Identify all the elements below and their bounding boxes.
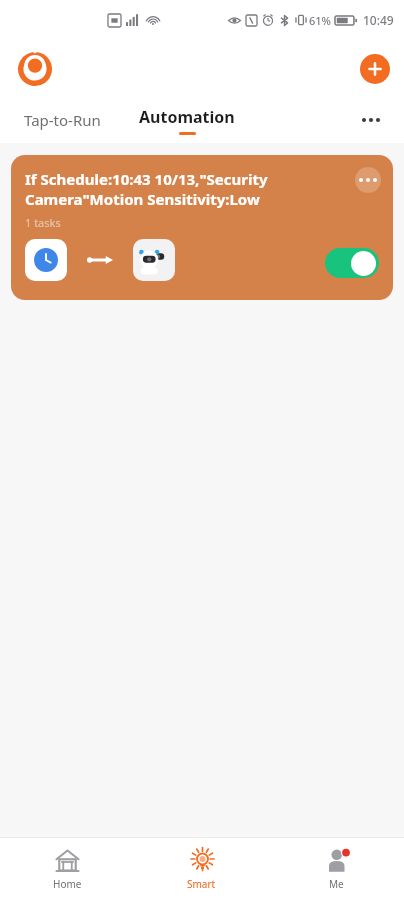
staticText: Automation — [139, 106, 235, 128]
button[interactable]: Profile — [14, 48, 56, 90]
button[interactable]: If Schedule:10:43 10/13,"Security Camera… — [11, 155, 393, 300]
button[interactable]: More options — [354, 103, 388, 137]
button[interactable]: Add — [360, 54, 390, 84]
staticText: Tap-to-Run — [24, 110, 101, 130]
staticText: 1 tasks — [25, 215, 61, 230]
staticText: Me — [329, 877, 344, 891]
button[interactable]: Smart — [134, 838, 269, 900]
button[interactable]: Home — [0, 838, 134, 900]
button[interactable]: Automation — [139, 106, 235, 135]
button[interactable]: Card menu — [355, 167, 381, 193]
staticText: If Schedule:10:43 10/13,"Security Camera… — [25, 169, 327, 209]
staticText: 10:49 — [363, 12, 394, 28]
button[interactable]: Tap-to-Run — [22, 104, 103, 136]
button[interactable]: Enable automation — [325, 248, 379, 278]
staticText: Smart — [187, 877, 216, 891]
staticText: 61% — [309, 13, 331, 28]
button[interactable]: Me — [269, 838, 404, 900]
staticText: Home — [53, 877, 82, 891]
